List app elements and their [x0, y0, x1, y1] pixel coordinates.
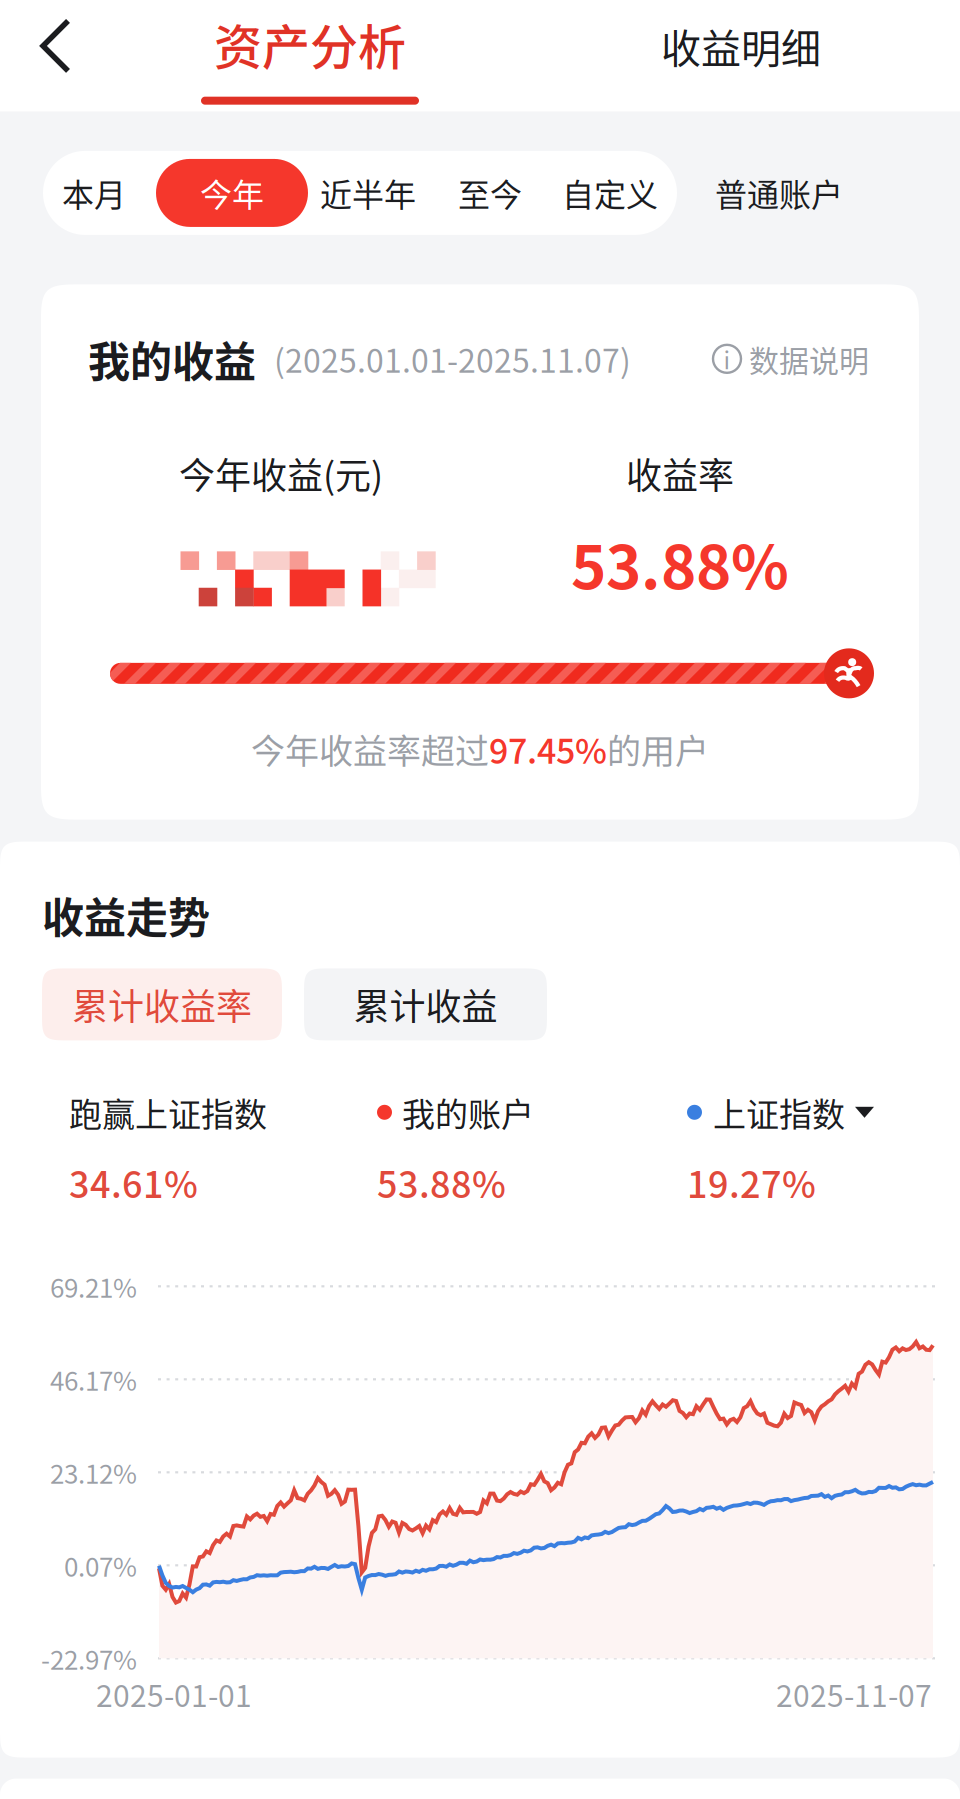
staticText: 今年: [200, 170, 264, 216]
staticText: 资产分析: [214, 9, 406, 79]
staticText: 近半年: [320, 170, 416, 216]
staticText: 收益率: [626, 447, 734, 499]
button[interactable]: 至今: [458, 151, 522, 235]
staticText: 今年收益(元): [179, 447, 383, 499]
button[interactable]: Back: [0, 0, 113, 110]
staticText: 19.27%: [687, 1156, 816, 1208]
button[interactable]: 收益明细: [633, 0, 849, 97]
button[interactable]: 累计收益率: [42, 968, 282, 1040]
staticText: -22.97%: [41, 1639, 137, 1677]
staticText: i: [723, 341, 730, 376]
button[interactable]: 近半年: [320, 151, 416, 235]
staticText: 数据说明: [749, 337, 869, 380]
staticText: 上证指数: [713, 1088, 845, 1136]
staticText: 2025-01-01: [96, 1672, 252, 1716]
staticText: 今年收益率超过: [251, 724, 489, 774]
staticText: 97.45%: [489, 724, 607, 774]
staticText: 累计收益: [353, 978, 497, 1030]
staticText: 累计收益率: [72, 978, 252, 1030]
staticText: 收益走势: [42, 885, 210, 945]
button[interactable]: 资产分析: [191, 0, 429, 112]
staticText: 23.12%: [50, 1453, 137, 1491]
staticText: 本月: [62, 170, 126, 216]
button[interactable]: 累计收益: [304, 968, 547, 1040]
staticText: 69.21%: [50, 1267, 137, 1305]
staticText: 跑赢上证指数: [69, 1088, 267, 1136]
staticText: (2025.01.01-2025.11.07): [274, 336, 631, 382]
staticText: 0.07%: [64, 1546, 137, 1584]
staticText: 53.88%: [571, 519, 789, 606]
button[interactable]: 自定义: [562, 151, 658, 235]
button[interactable]: 普通账户: [677, 151, 881, 235]
button[interactable]: 今年: [156, 159, 308, 227]
staticText: 53.88%: [377, 1156, 506, 1208]
staticText: 自定义: [562, 170, 658, 216]
staticText: 的用户: [607, 724, 709, 774]
staticText: 至今: [458, 170, 522, 216]
staticText: 34.61%: [69, 1156, 198, 1208]
button[interactable]: 本月: [43, 151, 145, 235]
button[interactable]: i: [713, 337, 869, 380]
staticText: 我的收益: [88, 328, 256, 389]
staticText: 我的账户: [402, 1088, 534, 1136]
staticText: 收益明细: [661, 17, 821, 75]
staticText: 46.17%: [50, 1360, 137, 1398]
staticText: 2025-11-07: [776, 1672, 932, 1716]
staticText: 普通账户: [715, 170, 843, 216]
